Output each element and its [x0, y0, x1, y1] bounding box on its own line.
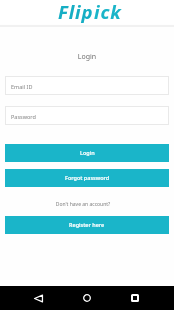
- staticText: Register here: [69, 221, 105, 228]
- staticText: ick: [94, 0, 122, 23]
- button[interactable]: Login: [5, 144, 169, 162]
- button[interactable]: Back: [25, 286, 51, 310]
- staticText: Don't have an account?: [0, 201, 170, 208]
- button[interactable]: Forgot password: [5, 169, 169, 187]
- button[interactable]: Email ID: [5, 76, 169, 95]
- button[interactable]: Password: [5, 106, 169, 125]
- staticText: Password: [11, 113, 36, 120]
- staticText: Flip: [58, 0, 94, 23]
- button[interactable]: Home: [74, 286, 100, 310]
- button[interactable]: Register here: [5, 216, 169, 234]
- staticText: Email ID: [11, 83, 33, 90]
- staticText: Forgot password: [65, 174, 110, 181]
- staticText: Login: [0, 52, 174, 62]
- staticText: Login: [80, 149, 95, 156]
- button[interactable]: Recent apps: [122, 286, 148, 310]
